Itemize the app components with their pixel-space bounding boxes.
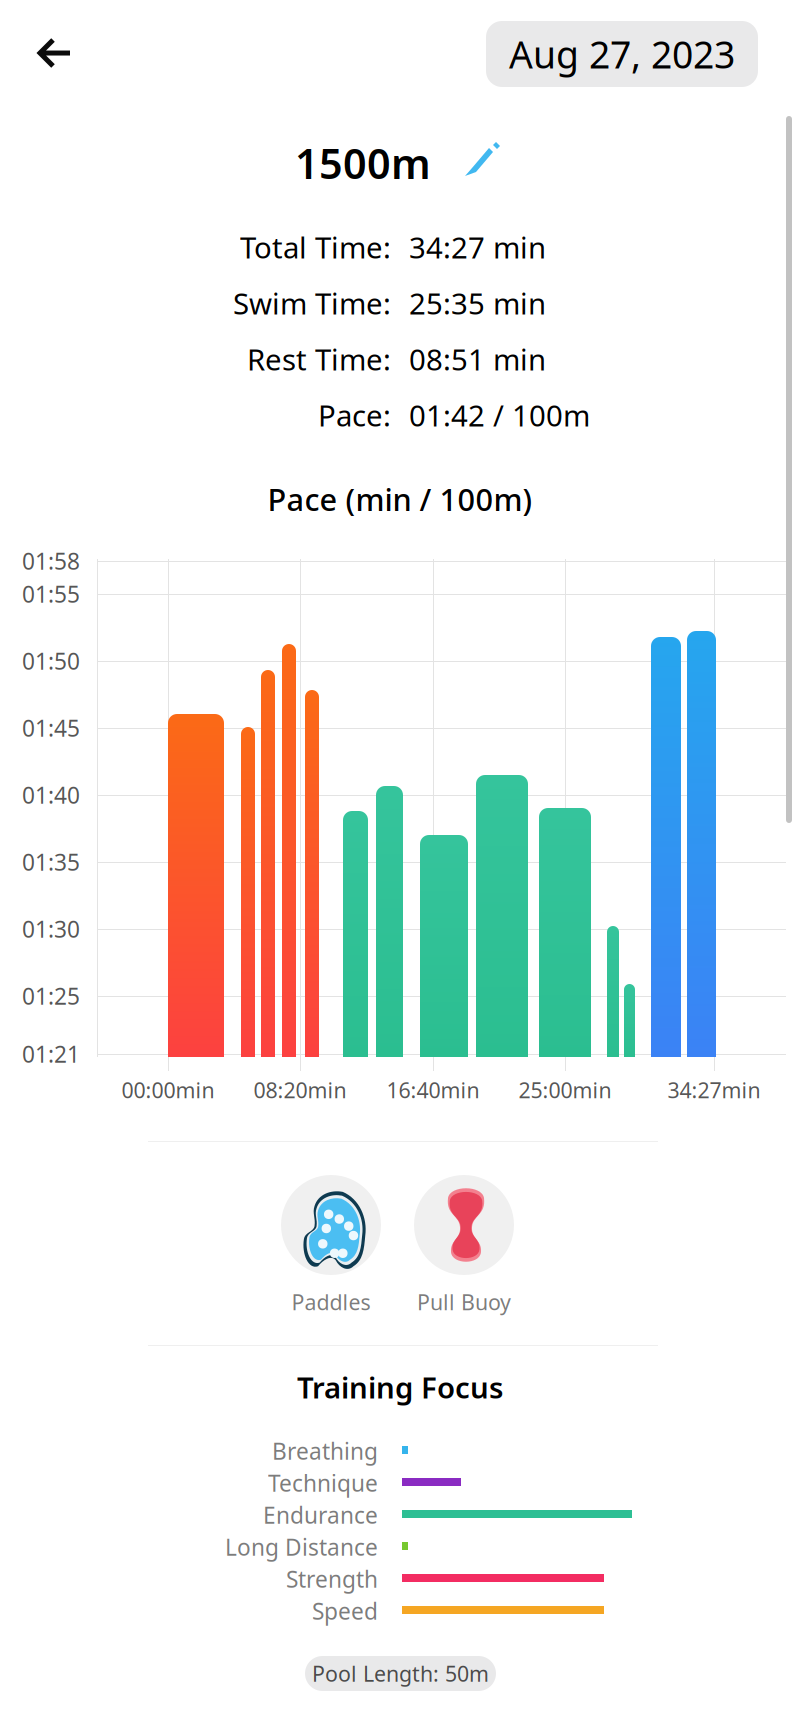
- staticText: 16:40min: [386, 1076, 479, 1104]
- staticText: 25:00min: [518, 1076, 611, 1104]
- staticText: 34:27min: [667, 1076, 760, 1104]
- staticText: Long Distance: [225, 1532, 378, 1562]
- staticText: Breathing: [272, 1436, 378, 1466]
- staticText: 01:55: [22, 579, 80, 609]
- button[interactable]: Edit workout name: [462, 140, 502, 180]
- staticText: Training Focus: [297, 1367, 503, 1406]
- staticText: 01:30: [22, 914, 80, 944]
- staticText: 01:42 / 100m: [409, 395, 590, 434]
- staticText: 08:51 min: [409, 339, 546, 378]
- button[interactable]: Back: [19, 19, 91, 87]
- staticText: Technique: [268, 1468, 378, 1498]
- staticText: 01:58: [22, 546, 80, 576]
- staticText: 34:27 min: [409, 227, 546, 266]
- staticText: Pool Length: 50m: [312, 1659, 489, 1688]
- staticText: 01:35: [22, 847, 80, 877]
- button[interactable]: Pool Length: 50m: [305, 1656, 496, 1691]
- staticText: Paddles: [291, 1288, 370, 1316]
- staticText: Pace:: [318, 395, 391, 434]
- button[interactable]: Paddles: [281, 1175, 381, 1315]
- staticText: 01:45: [22, 713, 80, 743]
- staticText: Pace (min / 100m): [267, 479, 532, 519]
- staticText: 01:21: [22, 1039, 80, 1069]
- staticText: 01:50: [22, 646, 80, 676]
- staticText: Rest Time:: [247, 339, 391, 378]
- staticText: Strength: [286, 1564, 378, 1594]
- staticText: 25:35 min: [409, 283, 546, 322]
- staticText: Speed: [312, 1596, 378, 1626]
- staticText: 00:00min: [121, 1076, 214, 1104]
- button[interactable]: Pull Buoy: [414, 1175, 514, 1315]
- staticText: 01:25: [22, 981, 80, 1011]
- staticText: 1500m: [295, 136, 431, 190]
- staticText: Endurance: [263, 1500, 378, 1530]
- staticText: 08:20min: [253, 1076, 346, 1104]
- staticText: Swim Time:: [233, 283, 391, 322]
- staticText: 01:40: [22, 780, 80, 810]
- staticText: Aug 27, 2023: [509, 29, 735, 79]
- staticText: Pull Buoy: [417, 1288, 511, 1316]
- button[interactable]: Aug 27, 2023: [486, 21, 758, 87]
- staticText: Total Time:: [240, 227, 391, 266]
